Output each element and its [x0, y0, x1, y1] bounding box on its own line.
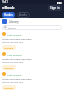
button[interactable]: Search	[2, 25, 62, 30]
staticText: Now playing	[7, 33, 22, 36]
staticText: Some long item title here	[2, 57, 32, 60]
button[interactable]: Books	[2, 12, 15, 18]
button[interactable]: Audio	[17, 12, 30, 18]
staticText: Preview	[4, 86, 14, 89]
button[interactable]: Sign in	[48, 5, 62, 11]
staticText: ▮▮▮	[57, 1, 62, 4]
staticText: Search	[8, 26, 16, 29]
staticText: 9:41	[2, 0, 8, 4]
staticText: Some long item title here	[2, 77, 32, 80]
staticText: eBook	[2, 5, 15, 10]
button[interactable]: Preview	[2, 65, 16, 70]
staticText: Subtitle text goes here	[2, 61, 24, 64]
staticText: Subtitle text goes here	[2, 41, 24, 44]
staticText: Books	[4, 13, 13, 17]
staticText: Preview	[4, 46, 14, 49]
staticText: Library	[9, 20, 19, 24]
staticText: Sign in	[50, 6, 60, 10]
button[interactable]: Now playing	[0, 32, 64, 52]
staticText: Now playing	[7, 73, 22, 76]
button[interactable]: Now playing	[0, 52, 64, 72]
staticText: Now playing	[7, 53, 22, 56]
staticText: Preview	[4, 66, 14, 69]
staticText: Audio	[19, 13, 28, 17]
button[interactable]: Now playing	[0, 72, 64, 92]
button[interactable]: Preview	[2, 85, 16, 90]
button[interactable]: Preview	[2, 45, 16, 50]
staticText: Some long item title here	[2, 37, 32, 40]
staticText: Subtitle text goes here	[2, 81, 24, 84]
